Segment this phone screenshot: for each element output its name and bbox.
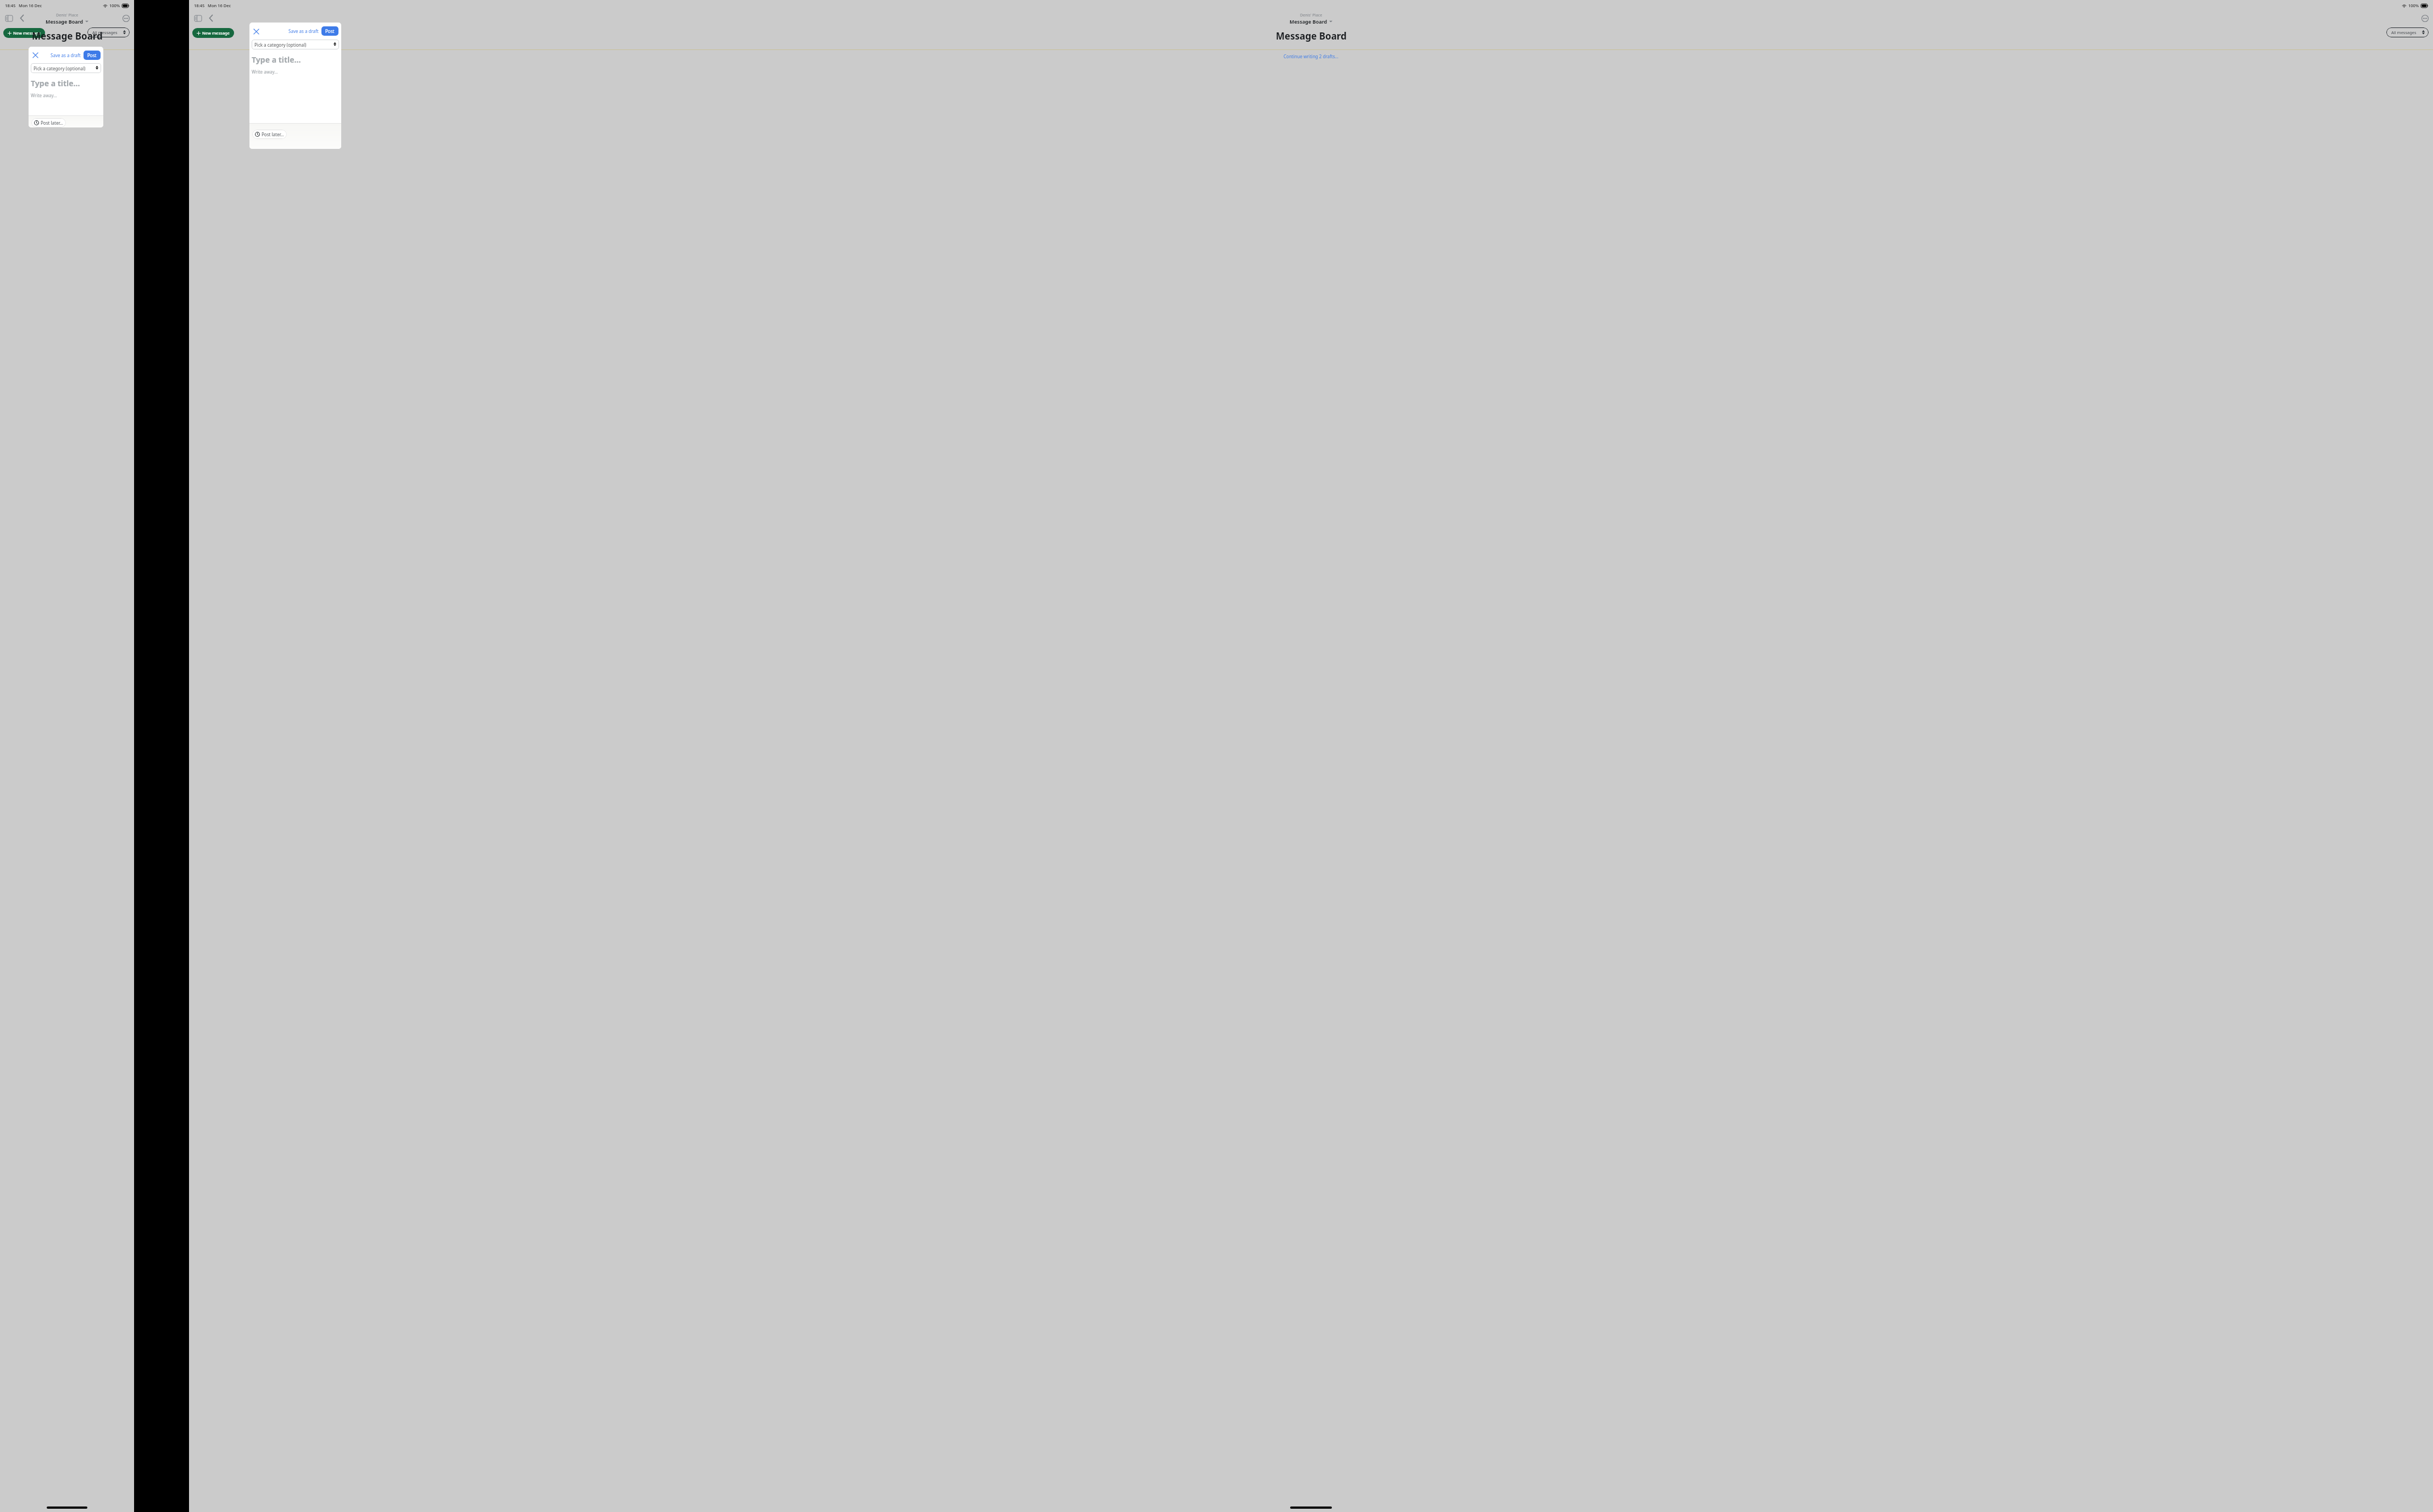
button[interactable]: Save as a draft — [49, 51, 82, 60]
staticText: Post announcements, pitch ideas, and gat… — [52, 96, 93, 119]
button[interactable]: All messages — [2386, 27, 2429, 37]
button[interactable]: Post later... — [252, 130, 287, 139]
staticText: New message — [13, 30, 41, 36]
staticText: 18:45 — [194, 3, 205, 8]
button[interactable]: Continue writing 2 drafts... — [40, 53, 95, 59]
button[interactable]: Toggle sidebar — [191, 12, 204, 25]
staticText: Mon 16 Dec — [19, 3, 42, 8]
staticText: Denis' Place — [1300, 12, 1323, 18]
staticText: No messages just yet — [52, 79, 93, 92]
button[interactable]: Message Board — [1290, 18, 1332, 25]
staticText: Pick a category (optional) — [254, 42, 307, 48]
button[interactable]: Type a title... — [31, 78, 80, 88]
button[interactable]: Message Board — [46, 18, 88, 25]
button[interactable]: Continue writing 2 drafts... — [1284, 53, 1338, 59]
button[interactable]: Post later... — [31, 118, 66, 127]
button[interactable]: More options — [2420, 13, 2430, 23]
button[interactable]: All messages — [87, 27, 130, 37]
button[interactable]: Close — [251, 26, 261, 36]
staticText: 100% — [2408, 3, 2419, 8]
button[interactable]: Back — [204, 12, 218, 25]
button[interactable]: New message — [3, 28, 45, 38]
button[interactable]: Back — [15, 12, 29, 25]
button[interactable]: Write away... — [252, 69, 278, 75]
button[interactable]: No messages just yet — [36, 71, 98, 119]
staticText: 100% — [109, 3, 120, 8]
staticText: Pick a category (optional) — [34, 65, 86, 71]
button[interactable]: Pick a category (optional) — [31, 63, 101, 73]
staticText: Message Board — [46, 18, 84, 25]
button[interactable]: Save as a draft — [287, 26, 320, 36]
button[interactable]: Write away... — [31, 92, 57, 98]
staticText: Message Board — [32, 30, 103, 42]
staticText: 18:45 — [5, 3, 16, 8]
staticText: Post later... — [41, 120, 63, 126]
staticText: New message — [202, 30, 230, 36]
staticText: Post — [87, 52, 97, 58]
button[interactable]: Type a title... — [252, 54, 301, 65]
staticText: Post later... — [262, 131, 284, 137]
staticText: Message Board — [1290, 18, 1327, 25]
button[interactable]: Toggle sidebar — [2, 12, 15, 25]
button[interactable]: New message — [192, 28, 234, 38]
staticText: Denis' Place — [56, 12, 79, 18]
button[interactable]: Close — [30, 50, 40, 60]
button[interactable]: Post — [321, 26, 338, 36]
button[interactable]: More options — [121, 13, 131, 23]
button[interactable]: Post — [84, 51, 101, 60]
staticText: Post — [325, 28, 335, 34]
staticText: All messages — [2391, 30, 2417, 35]
staticText: Message Board — [1276, 30, 1347, 42]
staticText: Mon 16 Dec — [208, 3, 231, 8]
button[interactable]: Pick a category (optional) — [252, 40, 339, 49]
staticText: All messages — [92, 30, 118, 35]
